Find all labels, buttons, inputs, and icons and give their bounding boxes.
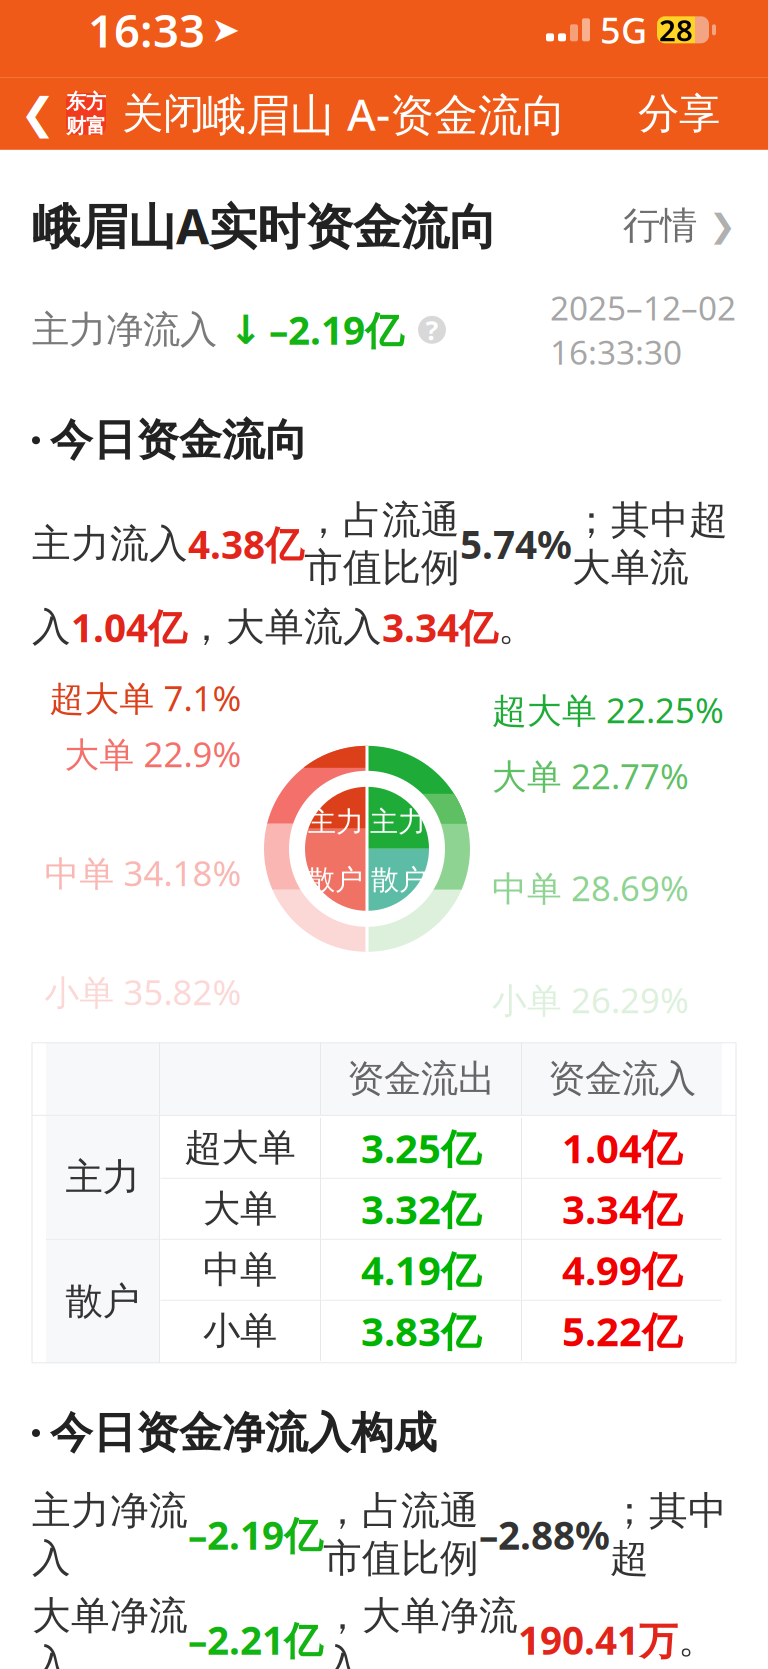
- staticText: 中单 34.18%: [44, 850, 241, 896]
- staticText: 今日资金流向: [50, 414, 308, 466]
- staticText: ，大单净流入: [323, 1592, 518, 1669]
- staticText: 1.04亿: [562, 1121, 682, 1174]
- staticText: ；其中超: [610, 1487, 727, 1582]
- staticText: 财富: [66, 114, 106, 138]
- staticText: 中单: [203, 1247, 277, 1293]
- button[interactable]: 说明: [418, 316, 446, 344]
- staticText: 4.38亿: [188, 518, 304, 570]
- staticText: –2.19亿: [269, 304, 404, 355]
- button[interactable]: 分享: [622, 80, 736, 147]
- staticText: 190.41万: [518, 1614, 678, 1665]
- staticText: 超大单 7.1%: [49, 675, 241, 721]
- staticText: –2.21亿: [188, 1614, 323, 1665]
- staticText: 4.99亿: [562, 1243, 682, 1296]
- staticText: 大单 22.77%: [492, 753, 689, 799]
- staticText: 主力净流入: [32, 1487, 188, 1582]
- staticText: 东方: [66, 89, 106, 114]
- staticText: 今日资金净流入构成: [50, 1407, 437, 1459]
- staticText: 超大单: [184, 1125, 295, 1171]
- staticText: 3.34亿: [382, 601, 498, 653]
- staticText: 中单 28.69%: [492, 865, 689, 911]
- staticText: 1.04亿: [71, 601, 187, 653]
- staticText: 关闭: [122, 88, 204, 139]
- staticText: 峨眉山 A-资金流向: [202, 85, 566, 143]
- staticText: 大单净流入: [32, 1592, 188, 1669]
- staticText: 5G: [600, 6, 647, 54]
- staticText: ，大单流入: [187, 603, 382, 651]
- staticText: 大单: [203, 1186, 277, 1232]
- staticText: 5.74%: [460, 518, 572, 570]
- staticText: ❯: [709, 207, 736, 244]
- staticText: 3.32亿: [361, 1182, 481, 1235]
- staticText: 主力: [65, 1154, 139, 1200]
- staticText: 4.19亿: [361, 1243, 481, 1296]
- staticText: 散户: [371, 863, 427, 897]
- staticText: ❮: [20, 90, 56, 138]
- staticText: 。: [678, 1616, 717, 1663]
- staticText: 主力流入: [32, 520, 188, 568]
- staticText: ；其中超大单流: [572, 496, 728, 591]
- staticText: ➤: [211, 10, 240, 49]
- staticText: 入: [32, 603, 71, 651]
- staticText: 分享: [638, 88, 720, 139]
- staticText: –2.19亿: [188, 1509, 323, 1560]
- staticText: 3.34亿: [562, 1182, 682, 1235]
- button[interactable]: 关闭: [106, 80, 220, 147]
- staticText: 超大单 22.25%: [492, 687, 724, 733]
- staticText: 小单: [203, 1308, 277, 1354]
- staticText: ↓: [229, 307, 263, 352]
- staticText: 3.25亿: [361, 1121, 481, 1174]
- staticText: ，占流通市值比例: [323, 1487, 479, 1582]
- staticText: 小单 35.82%: [44, 969, 241, 1015]
- button[interactable]: 行情: [623, 203, 736, 249]
- staticText: 小单 26.29%: [492, 977, 689, 1023]
- staticText: –2.88%: [479, 1509, 610, 1560]
- staticText: 资金流入: [548, 1056, 696, 1102]
- staticText: 大单 22.9%: [64, 731, 241, 777]
- staticText: 资金流出: [347, 1056, 495, 1102]
- staticText: ，占流通市值比例: [304, 496, 460, 591]
- staticText: 。: [498, 603, 537, 651]
- staticText: 2025–12–02 16:33:30: [550, 285, 736, 374]
- staticText: 散户: [65, 1278, 139, 1324]
- staticText: ?: [425, 312, 438, 347]
- staticText: 散户: [307, 863, 363, 897]
- staticText: 主力: [308, 805, 364, 839]
- staticText: 行情: [623, 203, 697, 249]
- button[interactable]: 返回: [0, 82, 106, 146]
- staticText: 28: [659, 10, 693, 49]
- staticText: 3.83亿: [361, 1304, 481, 1357]
- staticText: 主力: [370, 805, 426, 839]
- staticText: 峨眉山A实时资金流向: [32, 194, 497, 257]
- staticText: 主力净流入: [32, 307, 217, 353]
- staticText: 5.22亿: [562, 1304, 682, 1357]
- staticText: 16:33: [88, 0, 205, 60]
